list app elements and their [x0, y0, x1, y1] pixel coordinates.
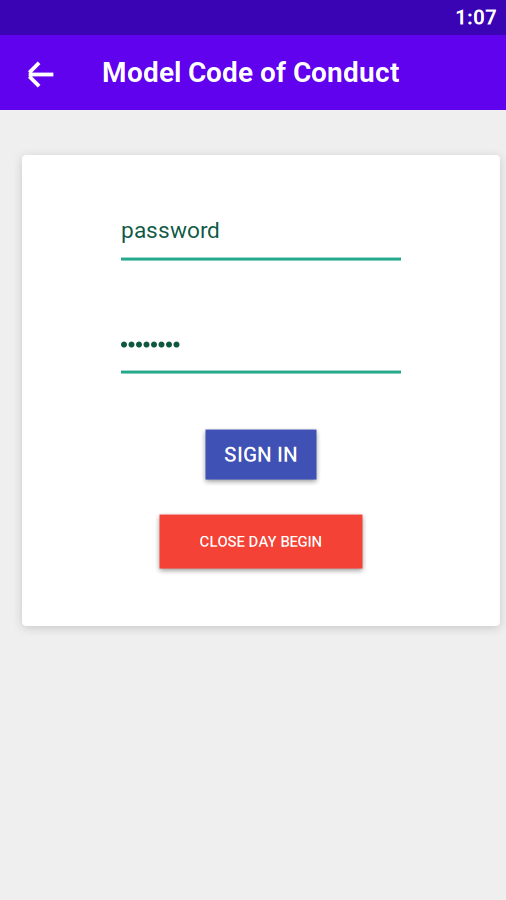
button[interactable]: CLOSE DAY BEGIN — [159, 515, 362, 569]
staticText: CLOSE DAY BEGIN — [199, 533, 322, 550]
button[interactable]: Password field — [121, 343, 401, 374]
button[interactable]: Back — [21, 35, 59, 110]
button[interactable]: User name field — [121, 217, 401, 261]
staticText: password — [121, 217, 220, 244]
button[interactable]: SIGN IN — [205, 430, 316, 480]
staticText: 1:07 — [455, 5, 497, 30]
staticText: SIGN IN — [224, 442, 298, 467]
staticText: Model Code of Conduct — [102, 56, 399, 89]
